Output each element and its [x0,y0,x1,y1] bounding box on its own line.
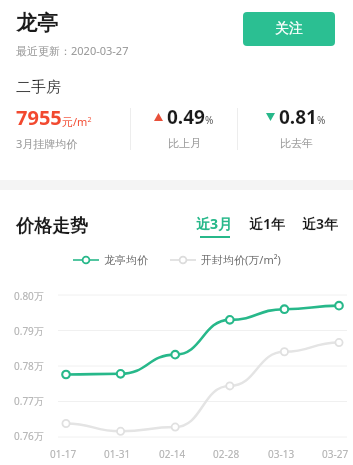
button[interactable]: 0.81% [238,104,353,156]
staticText: 0.78万 [14,359,44,373]
staticText: 02-28 [213,447,240,461]
staticText: 01-31 [104,447,131,461]
button[interactable]: 近3年 [302,214,339,238]
staticText: 0.79万 [14,324,44,338]
staticText: 0.81% [279,104,326,130]
staticText: 龙亭 [16,10,58,36]
staticText: 龙亭均价 [104,253,148,267]
staticText: 7955 [16,104,62,131]
staticText: 二手房 [16,78,61,97]
staticText: 比去年 [280,136,313,150]
staticText: 03-13 [268,447,295,461]
staticText: 0.49% [167,104,214,130]
staticText: 0.80万 [14,289,44,303]
staticText: 元/m2 [62,114,92,129]
staticText: 开封均价(万/m²) [201,252,281,267]
staticText: 03-27 [322,447,349,461]
staticText: 3月挂牌均价 [16,136,78,151]
button[interactable]: 7955 [0,104,130,156]
staticText: 近3月 [196,214,233,233]
button[interactable]: 近1年 [249,214,286,238]
button[interactable]: 0.49% [131,104,237,156]
staticText: 01-17 [50,447,77,461]
button[interactable]: 近3月 [196,214,233,238]
staticText: 0.76万 [14,429,44,443]
staticText: 比上月 [168,136,201,150]
staticText: 最近更新：2020-03-27 [16,43,129,58]
staticText: 关注 [275,20,303,38]
staticText: 0.77万 [14,394,44,408]
staticText: 近1年 [249,214,286,233]
staticText: 价格走势 [16,215,88,238]
button[interactable]: 关注 [243,12,335,46]
staticText: 02-14 [159,447,186,461]
staticText: 近3年 [302,214,339,233]
